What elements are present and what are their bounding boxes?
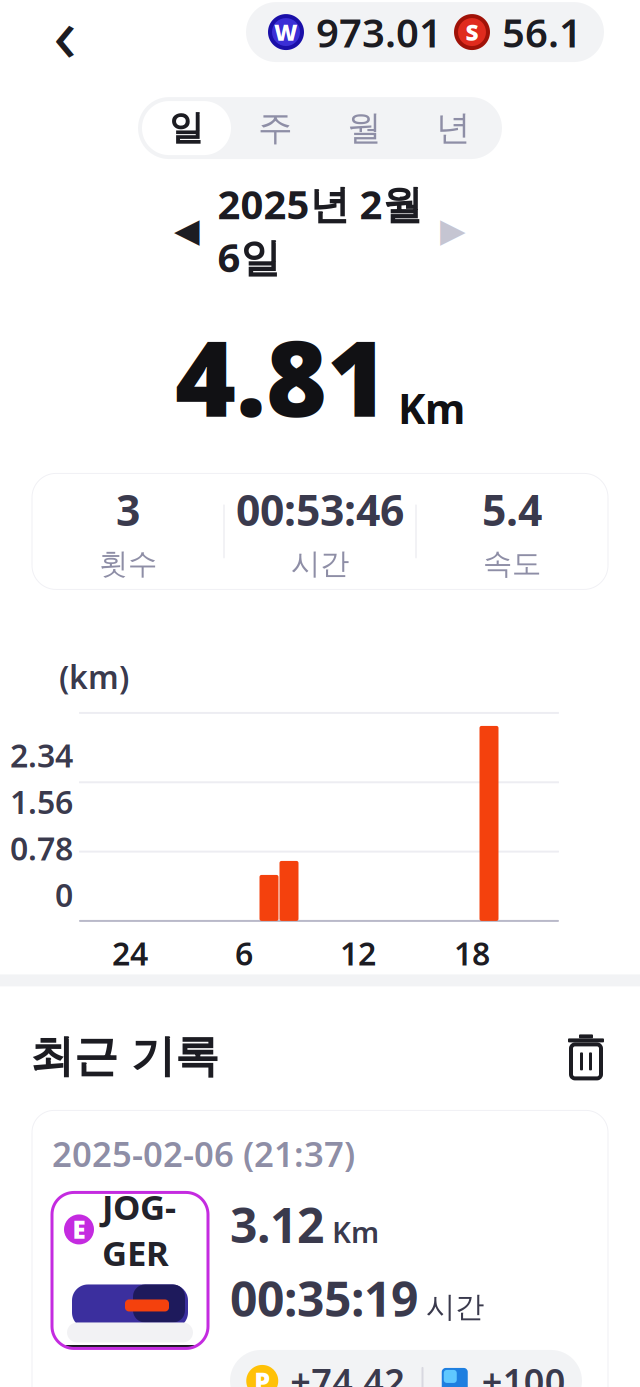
staticText: 3.12 <box>230 1192 324 1256</box>
button[interactable]: 2025-02-06 (21:37) <box>32 1110 608 1387</box>
staticText: 00:53:46 <box>236 481 404 538</box>
staticText: 6 <box>235 932 253 974</box>
button[interactable]: 년 <box>409 101 498 155</box>
staticText: Km <box>398 380 465 435</box>
button[interactable]: 월 <box>320 101 409 155</box>
button[interactable]: Next day <box>425 202 481 258</box>
button[interactable]: Delete records <box>558 1028 614 1084</box>
staticText: 00:35:19 <box>230 1266 418 1330</box>
staticText: +74.42 <box>290 1357 405 1387</box>
staticText: 973.01 <box>316 5 442 59</box>
staticText: 3 <box>116 481 140 538</box>
staticText: 12 <box>340 932 376 974</box>
staticText: JOGGER <box>102 1183 176 1275</box>
staticText: 5.4 <box>482 481 542 538</box>
staticText: 1.56 <box>10 780 73 823</box>
staticText: 2025년 2월 6일 <box>217 177 422 283</box>
staticText: ◀ <box>174 211 200 249</box>
staticText: ‹ <box>53 0 77 83</box>
button[interactable]: Previous day <box>159 202 215 258</box>
button[interactable]: 일 <box>142 101 231 155</box>
staticText: E <box>72 1213 85 1245</box>
staticText: 시간 <box>426 1289 484 1325</box>
staticText: 시간 <box>291 546 349 582</box>
staticText: 2025-02-06 (21:37) <box>52 1130 355 1176</box>
staticText: 24 <box>112 932 148 974</box>
staticText: 0 <box>55 873 73 916</box>
staticText: (km) <box>59 655 129 698</box>
staticText: Km <box>332 1212 379 1251</box>
staticText: 년 <box>436 107 471 149</box>
staticText: +100 <box>482 1357 566 1387</box>
staticText: 56.1 <box>502 5 582 59</box>
staticText: S <box>465 17 478 47</box>
staticText: 주 <box>258 107 293 149</box>
staticText: 최근 기록 <box>30 1029 219 1083</box>
button[interactable]: Back <box>28 0 102 69</box>
staticText: 4.81 <box>175 307 388 445</box>
staticText: 18 <box>454 932 490 974</box>
staticText: 월 <box>347 107 382 149</box>
staticText: P <box>254 1364 270 1387</box>
button[interactable]: 주 <box>231 101 320 155</box>
staticText: ▶ <box>440 211 466 249</box>
staticText: W <box>274 17 298 47</box>
staticText: 일 <box>169 107 204 149</box>
staticText: 횟수 <box>99 546 157 582</box>
button[interactable]: W <box>246 2 604 62</box>
staticText: 2.34 <box>10 734 73 776</box>
staticText: 속도 <box>483 546 541 582</box>
staticText: 0.78 <box>10 827 73 869</box>
